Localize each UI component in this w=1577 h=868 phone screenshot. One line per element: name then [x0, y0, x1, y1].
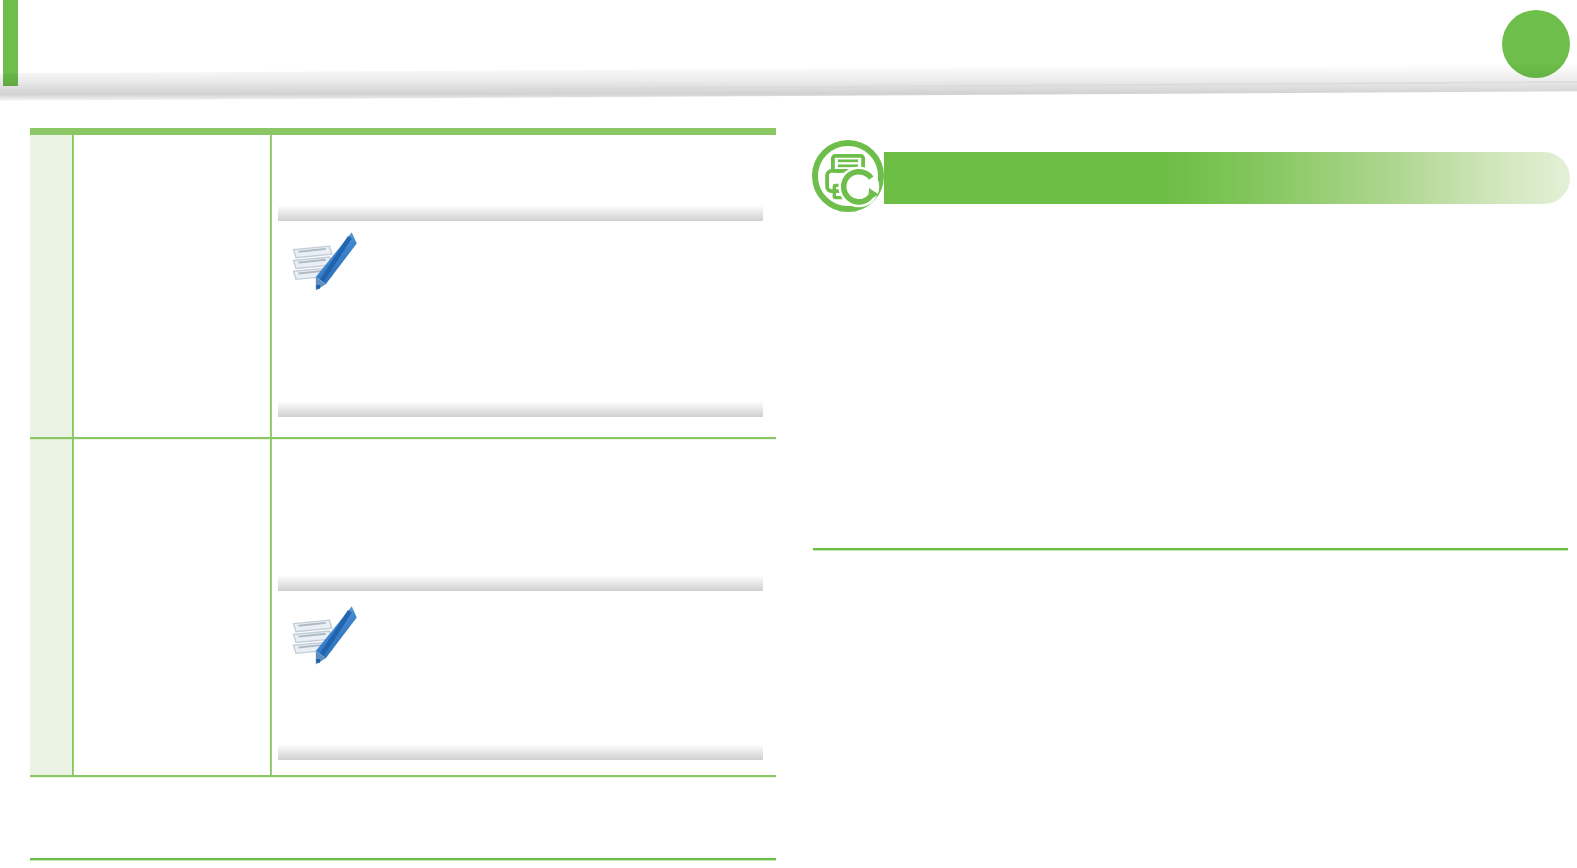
button[interactable]: [0, 0, 1577, 868]
